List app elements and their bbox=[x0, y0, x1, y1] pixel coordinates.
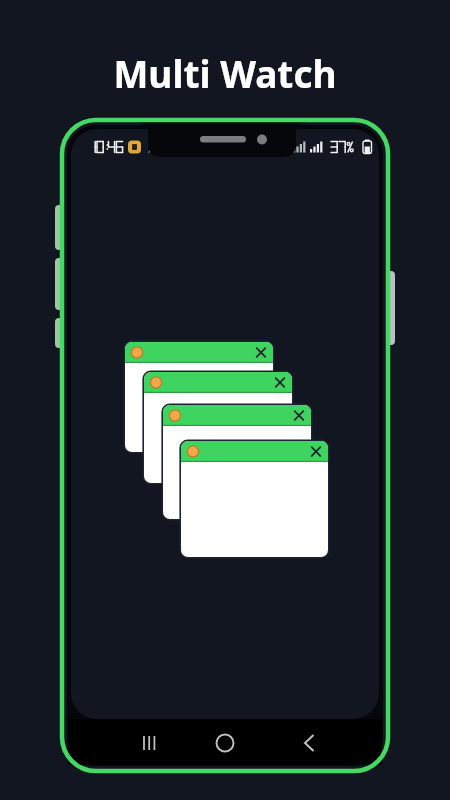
button[interactable]: Recent apps bbox=[120, 725, 168, 761]
button[interactable]: Watch window 4 bbox=[181, 441, 328, 557]
button[interactable]: Home bbox=[201, 725, 249, 761]
staticText: Multi Watch bbox=[0, 48, 450, 98]
button[interactable]: Back bbox=[283, 725, 331, 761]
